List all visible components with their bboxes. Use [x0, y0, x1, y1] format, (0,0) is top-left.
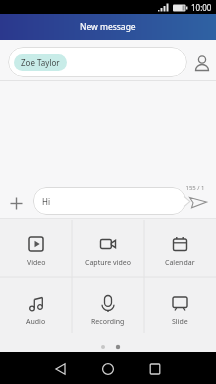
button[interactable]: Slide — [144, 277, 216, 335]
staticText: Video — [27, 258, 46, 268]
staticText: 155 / 1 — [180, 184, 210, 192]
button[interactable] — [94, 355, 122, 383]
staticText: Zoe Taylor — [21, 57, 60, 68]
staticText: 10:00 — [191, 2, 212, 13]
staticText: New message — [80, 21, 136, 33]
button[interactable]: Recording — [72, 277, 144, 335]
button[interactable] — [192, 53, 212, 75]
staticText: Audio — [26, 317, 46, 327]
button[interactable]: Video — [0, 218, 72, 277]
button[interactable] — [10, 197, 23, 210]
button[interactable]: Zoe Taylor — [14, 54, 67, 71]
button[interactable]: Audio — [0, 277, 72, 335]
staticText: Hi — [42, 196, 50, 207]
staticText: Slide — [172, 317, 188, 327]
button[interactable] — [141, 355, 169, 383]
button[interactable]: Capture video — [72, 218, 144, 277]
button[interactable]: Hi — [33, 187, 186, 215]
button[interactable] — [188, 194, 210, 212]
staticText: Capture video — [85, 258, 131, 268]
staticText: Calendar — [165, 258, 195, 268]
staticText: Recording — [91, 317, 125, 327]
button[interactable]: Calendar — [144, 218, 216, 277]
button[interactable]: Zoe Taylor — [8, 47, 187, 77]
button[interactable] — [47, 355, 75, 383]
